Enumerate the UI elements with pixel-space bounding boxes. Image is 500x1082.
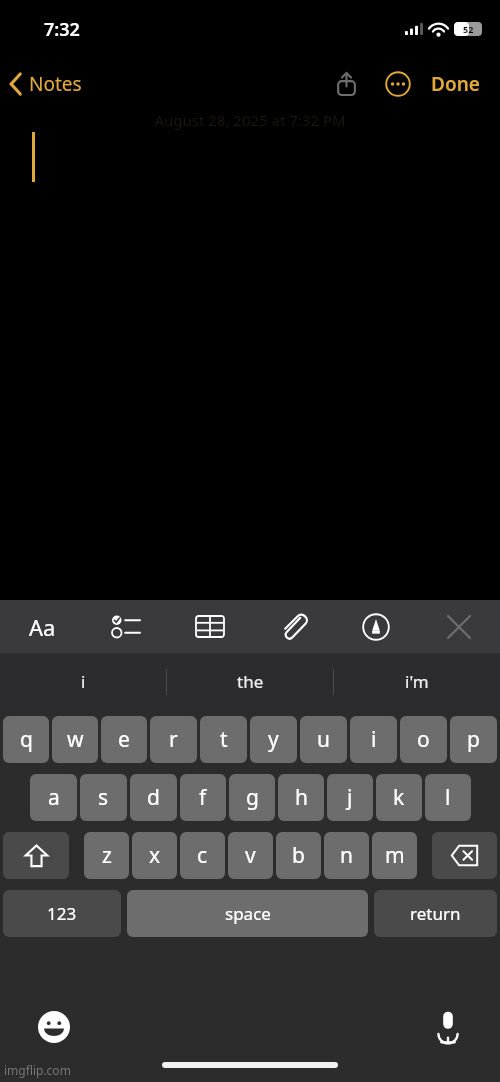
staticText: space [225,902,271,925]
button[interactable]: u [300,716,347,763]
button[interactable]: More options [377,63,419,105]
staticText: p [467,725,480,754]
button[interactable]: Share [325,63,367,105]
staticText: m [385,841,405,870]
button[interactable]: Text format [0,600,84,653]
staticText: c [197,841,208,870]
button[interactable]: j [327,774,373,821]
button[interactable]: x [132,832,177,879]
button[interactable]: the [167,653,333,710]
staticText: v [245,841,256,870]
staticText: i'm [405,670,429,693]
button[interactable]: i [0,653,166,710]
staticText: e [118,725,130,754]
button[interactable]: Checklist [84,600,168,653]
staticText: u [317,725,330,754]
button[interactable]: d [130,774,177,821]
staticText: g [246,783,259,812]
staticText: August 28, 2025 at 7:32 PM [154,110,346,130]
button[interactable]: v [228,832,273,879]
staticText: b [292,841,305,870]
staticText: k [393,783,405,812]
button[interactable]: Notes [0,65,90,103]
button[interactable]: Attach [251,600,334,653]
staticText: w [67,725,84,754]
staticText: z [102,841,112,870]
button[interactable]: Close keyboard [417,600,500,653]
staticText: 123 [47,902,77,925]
staticText: 7:32 [44,17,80,42]
staticText: f [199,783,207,812]
button[interactable]: c [180,832,225,879]
staticText: Done [431,71,480,97]
button[interactable]: i [350,716,397,763]
button[interactable]: return [374,890,497,937]
button[interactable]: h [278,774,324,821]
button[interactable]: m [372,832,417,879]
staticText: j [347,783,353,812]
button[interactable]: Table [168,600,251,653]
staticText: i [81,670,86,693]
staticText: h [295,783,308,812]
button[interactable]: Shift [3,832,69,879]
button[interactable]: g [229,774,275,821]
button[interactable]: i'm [334,653,500,710]
button[interactable]: o [400,716,447,763]
button[interactable]: August 28, 2025 at 7:32 PM [0,110,500,600]
staticText: 52 [463,23,474,35]
button[interactable]: w [52,716,98,763]
staticText: n [340,841,353,870]
staticText: i [371,725,377,754]
staticText: Notes [29,71,82,97]
button[interactable]: t [200,716,247,763]
button[interactable]: f [180,774,226,821]
staticText: Aa [29,612,56,642]
button[interactable]: b [276,832,321,879]
button[interactable]: Delete [432,832,497,879]
button[interactable]: l [425,774,471,821]
button[interactable]: n [324,832,369,879]
staticText: q [20,725,33,754]
staticText: x [149,841,161,870]
staticText: r [169,725,178,754]
staticText: return [410,902,461,925]
staticText: t [220,725,228,754]
button[interactable]: e [101,716,147,763]
button[interactable]: Done [425,63,486,105]
staticText: imgflip.com [4,1062,71,1078]
staticText: d [147,783,160,812]
staticText: o [417,725,430,754]
button[interactable]: q [3,716,49,763]
button[interactable]: Emoji [30,1003,78,1051]
button[interactable]: Markup [334,600,417,653]
button[interactable]: a [30,774,77,821]
staticText: l [445,783,451,812]
staticText: y [268,725,279,754]
staticText: a [48,783,60,812]
button[interactable]: y [250,716,297,763]
button[interactable]: k [376,774,422,821]
staticText: the [237,670,264,693]
staticText: s [98,783,109,812]
button[interactable]: s [80,774,127,821]
button[interactable]: 123 [3,890,121,937]
button[interactable]: r [150,716,197,763]
button[interactable]: space [127,890,368,937]
button[interactable]: p [450,716,497,763]
button[interactable]: z [84,832,129,879]
button[interactable]: Dictation [424,1003,472,1051]
